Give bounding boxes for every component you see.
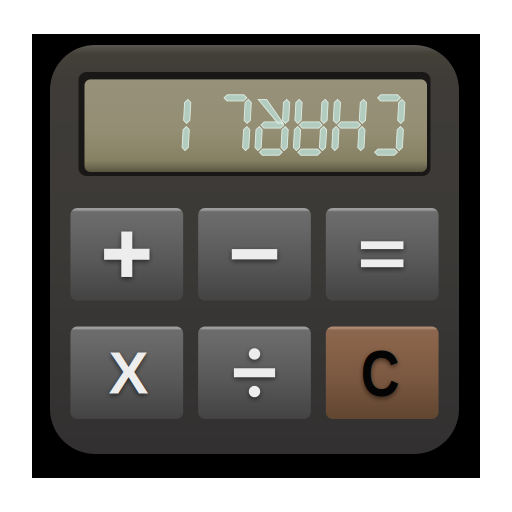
staticText: X <box>108 339 148 406</box>
button[interactable]: Equals <box>326 208 439 300</box>
staticText: C <box>357 338 403 409</box>
button[interactable]: Divide <box>198 326 311 419</box>
button[interactable]: Add <box>70 208 183 300</box>
button[interactable]: Clear <box>326 326 439 419</box>
button[interactable]: Subtract <box>198 208 311 300</box>
button[interactable]: Multiply <box>70 326 183 419</box>
